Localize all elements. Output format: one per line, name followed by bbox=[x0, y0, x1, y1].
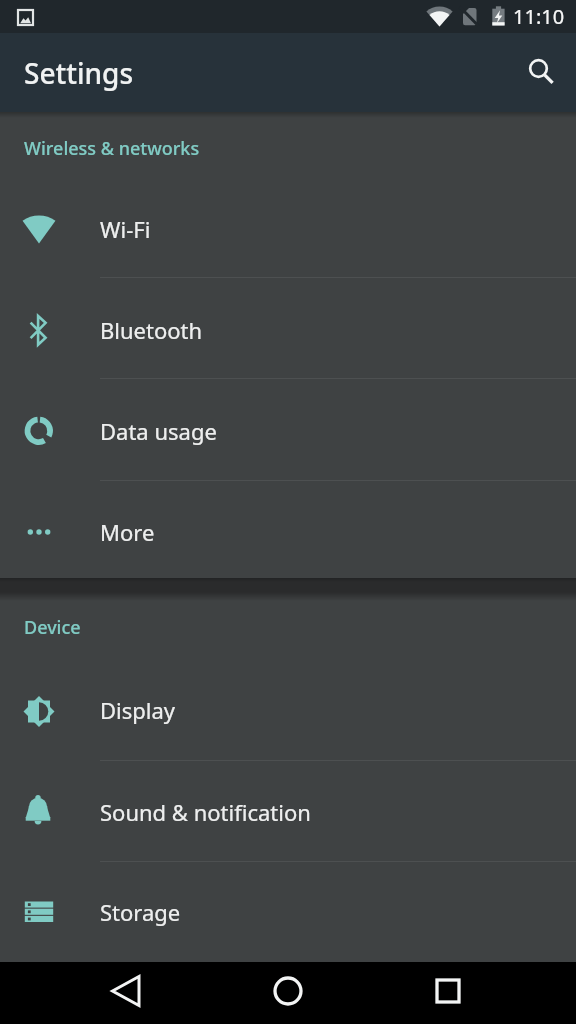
button[interactable]: Bluetooth bbox=[0, 280, 576, 381]
button[interactable]: Data usage bbox=[0, 381, 576, 482]
button[interactable]: Display bbox=[0, 660, 576, 761]
button[interactable] bbox=[416, 962, 480, 1024]
staticText: Wireless & networks bbox=[24, 136, 200, 161]
staticText: Wi-Fi bbox=[100, 214, 151, 244]
staticText: Storage bbox=[100, 897, 181, 927]
staticText: Bluetooth bbox=[100, 315, 203, 345]
staticText: Data usage bbox=[100, 416, 217, 446]
button[interactable] bbox=[256, 962, 320, 1024]
button[interactable]: More bbox=[0, 482, 576, 583]
staticText: Device bbox=[24, 615, 81, 640]
button[interactable]: Wi-Fi bbox=[0, 179, 576, 280]
button[interactable] bbox=[94, 962, 158, 1024]
staticText: Display bbox=[100, 695, 176, 725]
staticText: More bbox=[100, 517, 155, 547]
button[interactable]: Sound & notification bbox=[0, 762, 576, 863]
button[interactable]: Storage bbox=[0, 862, 576, 963]
staticText: Settings bbox=[24, 54, 134, 92]
staticText: Sound & notification bbox=[100, 797, 311, 827]
button[interactable] bbox=[512, 45, 566, 99]
staticText: 11:10 bbox=[513, 3, 565, 30]
